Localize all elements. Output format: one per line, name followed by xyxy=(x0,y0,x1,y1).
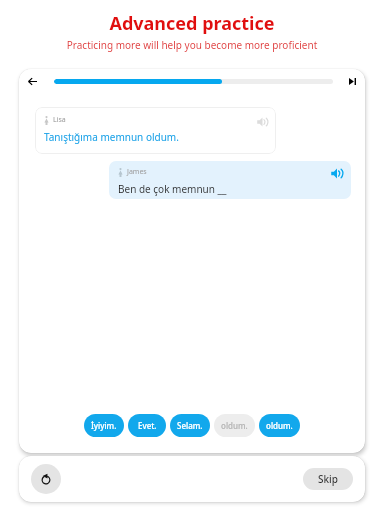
staticText: James xyxy=(127,167,147,177)
button[interactable]: Back xyxy=(23,72,42,91)
button[interactable]: İyiyim. xyxy=(84,414,124,437)
button[interactable]: oldum. xyxy=(259,414,300,437)
button[interactable]: Play audio xyxy=(331,168,343,179)
button[interactable]: Skip xyxy=(303,468,353,490)
staticText: Tanıştığıma memnun oldum. xyxy=(44,130,179,144)
button[interactable]: Play audio xyxy=(257,117,268,127)
button[interactable]: Skip to end xyxy=(344,73,361,90)
staticText: Advanced practice xyxy=(0,11,384,36)
staticText: oldum. xyxy=(221,420,248,431)
staticText: Evet. xyxy=(138,420,157,431)
staticText: Lisa xyxy=(53,115,66,125)
staticText: Practicing more will help you become mor… xyxy=(0,38,384,52)
staticText: İyiyim. xyxy=(91,420,117,431)
staticText: Skip xyxy=(318,472,338,486)
button[interactable]: Lisa xyxy=(35,107,276,154)
button[interactable]: oldum. xyxy=(214,414,255,437)
button[interactable]: Selam. xyxy=(170,414,210,437)
button[interactable]: Evet. xyxy=(128,414,166,437)
staticText: oldum. xyxy=(266,420,293,431)
staticText: Selam. xyxy=(177,420,203,431)
button[interactable]: Replay xyxy=(31,464,61,494)
button[interactable]: James xyxy=(109,161,351,199)
staticText: Ben de çok memnun __ xyxy=(118,182,227,196)
